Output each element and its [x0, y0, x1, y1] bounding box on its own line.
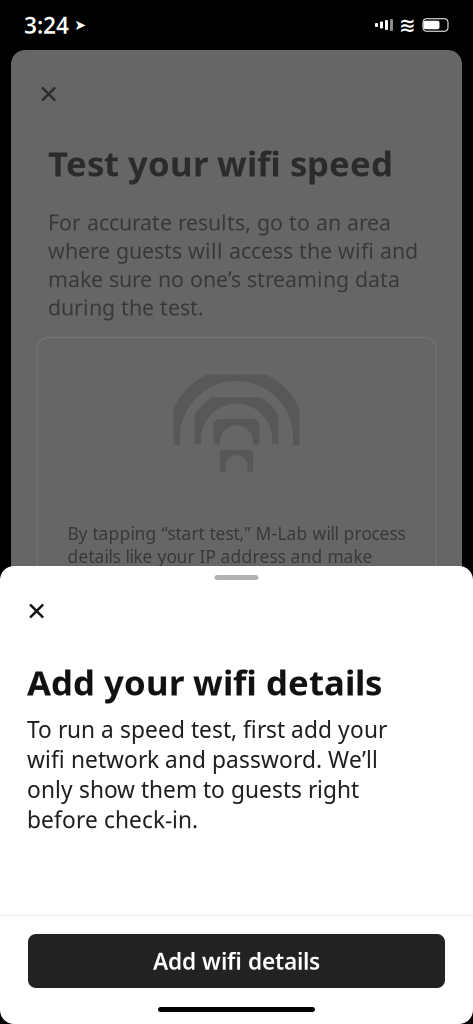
button[interactable]: Close — [31, 77, 66, 112]
button[interactable]: Close — [19, 594, 54, 629]
staticText: Add your wifi details — [27, 659, 382, 705]
staticText: To run a speed test, first add your wifi… — [27, 714, 387, 834]
staticText: For accurate results, go to an area wher… — [48, 208, 418, 321]
staticText: 3:24 — [24, 10, 69, 40]
staticText: ➤ — [74, 17, 86, 33]
staticText: ✕ — [38, 80, 59, 109]
staticText: ≋ — [399, 14, 416, 36]
button[interactable]: Add wifi details — [28, 934, 445, 988]
staticText: By tapping “start test,” M-Lab will proc… — [67, 522, 405, 637]
staticText: Add wifi details — [153, 946, 320, 976]
staticText: Test your wifi speed — [48, 140, 393, 186]
staticText: ✕ — [26, 597, 47, 626]
